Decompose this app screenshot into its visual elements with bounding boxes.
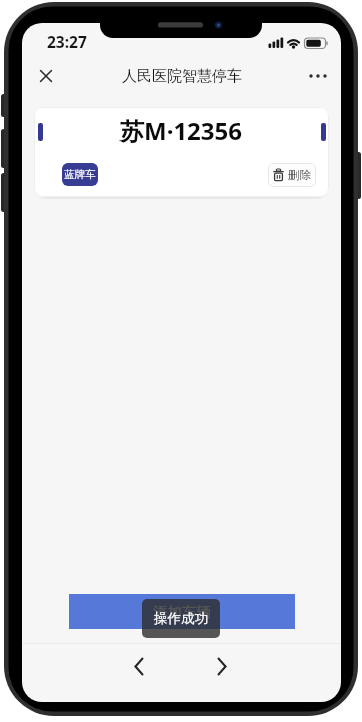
button[interactable]: 蓝牌车	[62, 163, 98, 186]
button[interactable]: 添加车辆	[69, 594, 295, 629]
staticText: 23:27	[47, 31, 87, 49]
button[interactable]	[306, 64, 330, 88]
button[interactable]: 删除	[268, 163, 316, 187]
staticText: 蓝牌车	[64, 168, 96, 181]
button[interactable]	[200, 651, 244, 681]
staticText: 苏M·12356	[120, 114, 243, 147]
staticText: 人民医院智慧停车	[122, 67, 242, 86]
staticText: 操作成功	[154, 610, 208, 627]
staticText: 删除	[288, 168, 311, 182]
button[interactable]	[32, 62, 60, 90]
staticText: 添加车辆	[153, 603, 211, 621]
button[interactable]	[117, 651, 161, 681]
